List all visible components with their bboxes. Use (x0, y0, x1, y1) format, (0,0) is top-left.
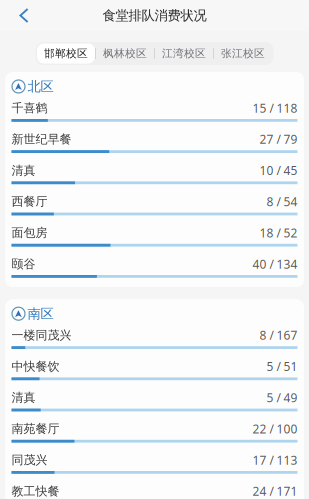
staticText: 40 / 134 (252, 256, 297, 272)
staticText: 同茂兴 (11, 453, 47, 467)
button[interactable]: Back (0, 0, 42, 31)
staticText: 颐谷 (11, 257, 35, 271)
button[interactable]: 颐谷 (11, 255, 297, 286)
staticText: 千喜鹤 (11, 101, 47, 115)
staticText: 北区 (27, 78, 53, 95)
staticText: 教工快餐 (11, 484, 59, 498)
staticText: 一楼同茂兴 (11, 328, 71, 342)
staticText: 南苑餐厅 (11, 421, 59, 436)
staticText: 南区 (27, 305, 53, 322)
button[interactable]: 清真 (11, 389, 297, 420)
staticText: 西餐厅 (11, 194, 47, 209)
staticText: 面包房 (11, 225, 47, 240)
staticText: 15 / 118 (252, 100, 297, 116)
staticText: 17 / 113 (252, 452, 297, 468)
staticText: 27 / 79 (259, 131, 297, 147)
staticText: 清真 (11, 390, 35, 405)
button[interactable]: 同茂兴 (11, 451, 297, 482)
staticText: 22 / 100 (252, 421, 297, 437)
staticText: 清真 (11, 163, 35, 178)
staticText: 张江校区 (221, 47, 265, 60)
button[interactable]: 清真 (11, 161, 297, 193)
staticText: 江湾校区 (162, 47, 206, 60)
staticText: 新世纪早餐 (11, 132, 71, 146)
staticText: 邯郸校区 (44, 47, 88, 60)
button[interactable]: 新世纪早餐 (11, 130, 297, 161)
button[interactable]: 江湾校区 (155, 43, 213, 63)
button[interactable]: 西餐厅 (11, 193, 297, 224)
staticText: 8 / 54 (266, 194, 297, 209)
button[interactable]: 枫林校区 (96, 43, 154, 63)
staticText: 中快餐饮 (11, 359, 59, 374)
button[interactable]: 教工快餐 (11, 482, 297, 499)
button[interactable]: 中快餐饮 (11, 357, 297, 389)
button[interactable]: 千喜鹤 (11, 99, 297, 130)
staticText: 食堂排队消费状况 (102, 7, 206, 24)
staticText: 5 / 49 (266, 390, 297, 405)
staticText: 24 / 171 (252, 483, 297, 499)
button[interactable]: 南苑餐厅 (11, 420, 297, 451)
button[interactable]: 一楼同茂兴 (11, 326, 297, 357)
staticText: 10 / 45 (259, 162, 297, 178)
staticText: 枫林校区 (103, 47, 147, 60)
staticText: 18 / 52 (259, 225, 297, 241)
button[interactable]: 面包房 (11, 224, 297, 255)
button[interactable]: 张江校区 (214, 43, 272, 63)
button[interactable]: 邯郸校区 (37, 43, 95, 63)
staticText: 8 / 167 (259, 327, 297, 343)
staticText: 5 / 51 (266, 358, 297, 374)
